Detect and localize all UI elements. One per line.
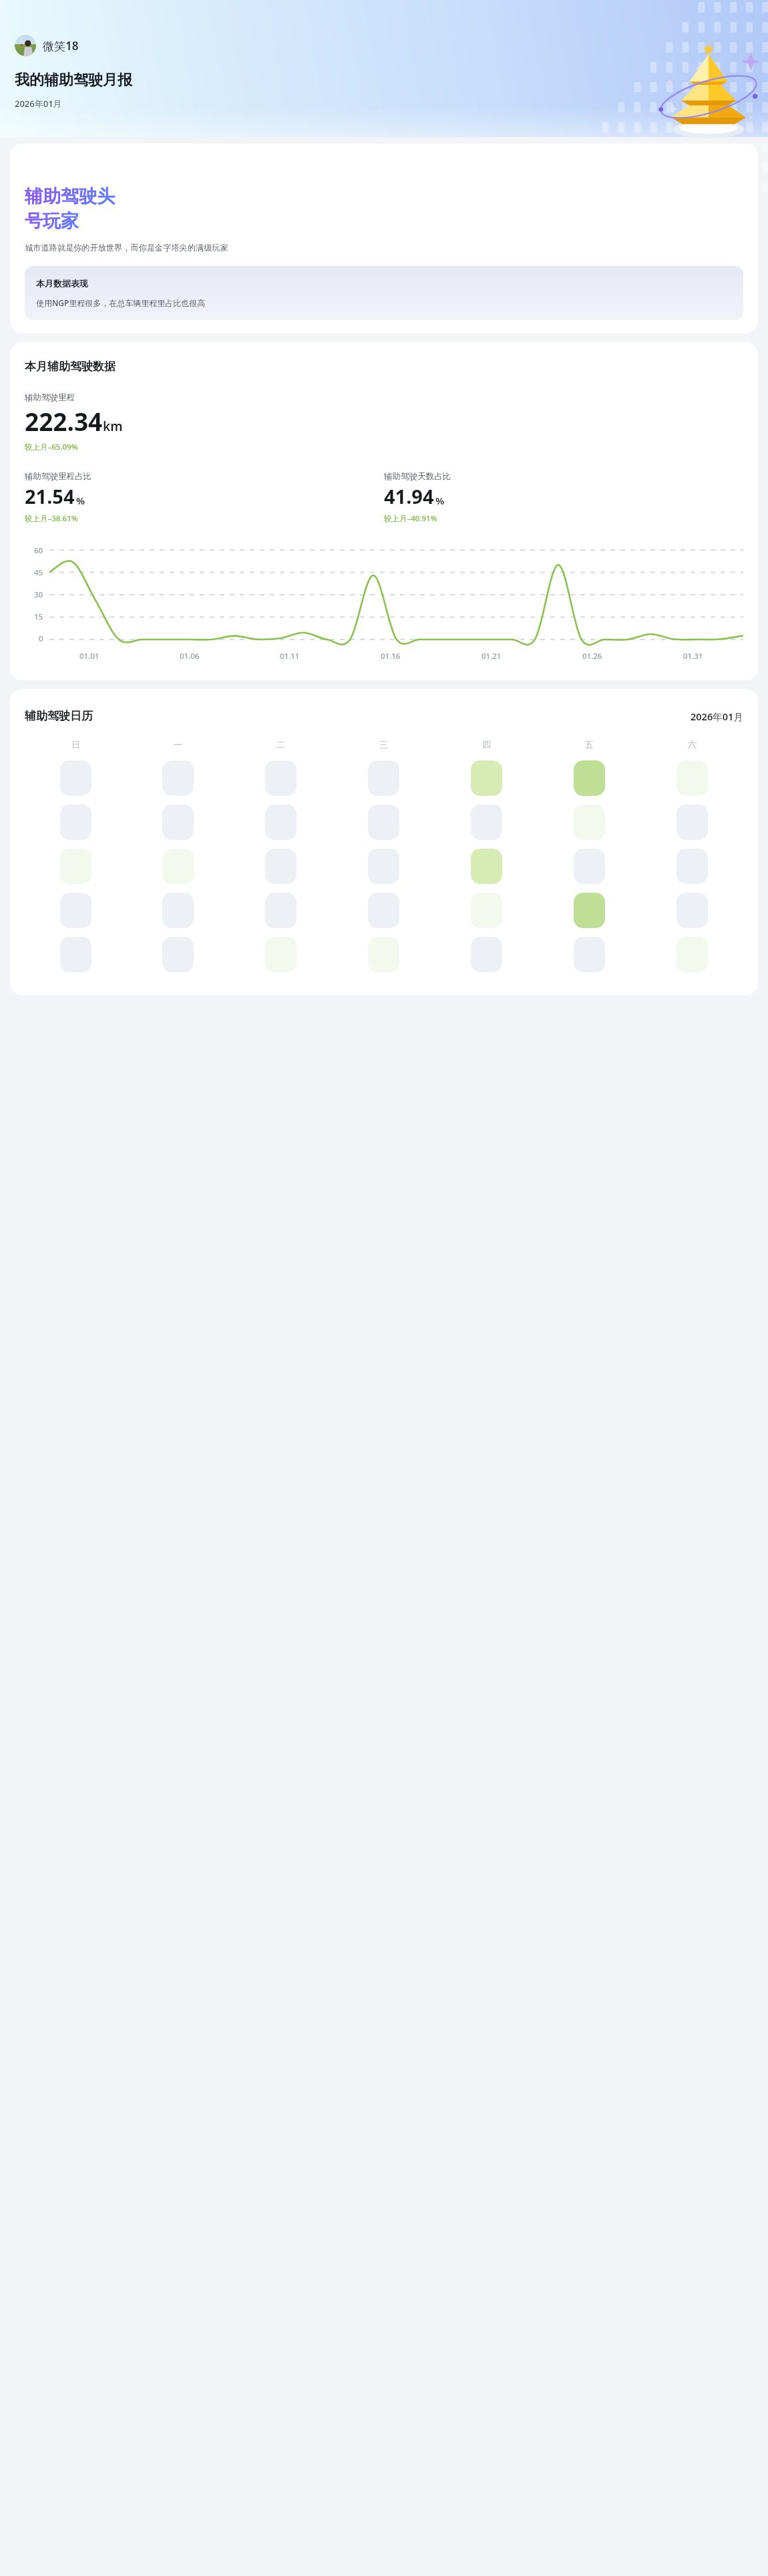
staticText: 辅助驾驶里程占比: [25, 471, 91, 482]
button[interactable]: [368, 805, 399, 840]
other: Profile avatar: [15, 35, 36, 56]
button[interactable]: [368, 760, 399, 796]
button[interactable]: [574, 760, 605, 796]
staticText: 45: [34, 567, 43, 578]
button[interactable]: [162, 893, 194, 928]
button[interactable]: [471, 893, 502, 928]
staticText: 五: [585, 739, 594, 750]
staticText: 二: [276, 739, 285, 750]
staticText: 01.16: [381, 651, 401, 662]
staticText: 日: [71, 739, 80, 750]
staticText: 01.21: [482, 651, 502, 662]
button[interactable]: [265, 937, 297, 972]
staticText: 01.26: [582, 651, 602, 662]
button[interactable]: [677, 760, 708, 796]
staticText: 我的辅助驾驶月报: [15, 71, 132, 90]
button[interactable]: [162, 760, 194, 796]
staticText: 三: [379, 739, 388, 750]
staticText: 01.11: [280, 651, 300, 662]
button[interactable]: [265, 849, 297, 884]
button[interactable]: 辅助驾驶日历: [10, 689, 758, 995]
staticText: 城市道路就是你的开放世界，而你是金字塔尖的满级玩家: [25, 243, 228, 253]
button[interactable]: [265, 760, 297, 796]
button[interactable]: 本月辅助驾驶数据: [10, 342, 758, 680]
button[interactable]: [368, 893, 399, 928]
staticText: 号玩家: [25, 210, 79, 233]
staticText: 30: [34, 589, 43, 600]
staticText: 辅助驾驶里程: [25, 392, 75, 403]
staticText: 使用NGP里程很多，在总车辆里程里占比也很高: [36, 297, 206, 308]
button[interactable]: [265, 805, 297, 840]
button[interactable]: [265, 893, 297, 928]
button[interactable]: [162, 849, 194, 884]
staticText: 微笑18: [43, 38, 79, 53]
button[interactable]: [162, 937, 194, 972]
staticText: 四: [482, 739, 491, 750]
staticText: %: [76, 494, 85, 507]
button[interactable]: [677, 937, 708, 972]
button[interactable]: [60, 805, 91, 840]
staticText: 较上月–65.09%: [25, 442, 78, 452]
staticText: 41.94: [384, 483, 434, 509]
staticText: 222.34: [25, 404, 103, 438]
staticText: 辅助驾驶日历: [25, 709, 93, 723]
button[interactable]: [162, 805, 194, 840]
staticText: 六: [688, 739, 697, 750]
button[interactable]: [471, 849, 502, 884]
staticText: 本月数据表现: [36, 278, 88, 289]
staticText: 01.31: [683, 651, 703, 662]
staticText: %: [435, 494, 445, 507]
button[interactable]: [368, 937, 399, 972]
staticText: 本月辅助驾驶数据: [25, 360, 116, 374]
staticText: 0: [39, 633, 43, 644]
staticText: 21.54: [25, 483, 75, 509]
staticText: 较上月–40.91%: [384, 513, 437, 524]
button[interactable]: [574, 937, 605, 972]
staticText: 15: [34, 611, 43, 622]
button[interactable]: [471, 805, 502, 840]
button[interactable]: 辅助驾驶头: [10, 144, 758, 333]
button[interactable]: [471, 937, 502, 972]
staticText: 辅助驾驶天数占比: [384, 471, 451, 482]
button[interactable]: Profile avatar: [15, 35, 84, 56]
button[interactable]: [574, 805, 605, 840]
staticText: 2026年01月: [15, 98, 62, 110]
staticText: 01.01: [79, 651, 100, 662]
staticText: 较上月–38.61%: [25, 513, 78, 524]
staticText: 2026年01月: [691, 710, 743, 723]
staticText: 辅助驾驶头: [25, 185, 115, 208]
button[interactable]: [60, 893, 91, 928]
button[interactable]: [574, 893, 605, 928]
button[interactable]: [677, 893, 708, 928]
button[interactable]: [368, 849, 399, 884]
button[interactable]: [60, 937, 91, 972]
button[interactable]: [471, 760, 502, 796]
button[interactable]: [574, 849, 605, 884]
button[interactable]: [677, 849, 708, 884]
staticText: 01.06: [180, 651, 200, 662]
staticText: km: [103, 418, 123, 435]
staticText: 一: [174, 739, 182, 750]
button[interactable]: [677, 805, 708, 840]
button[interactable]: [60, 760, 91, 796]
button[interactable]: [60, 849, 91, 884]
staticText: 60: [34, 545, 43, 556]
